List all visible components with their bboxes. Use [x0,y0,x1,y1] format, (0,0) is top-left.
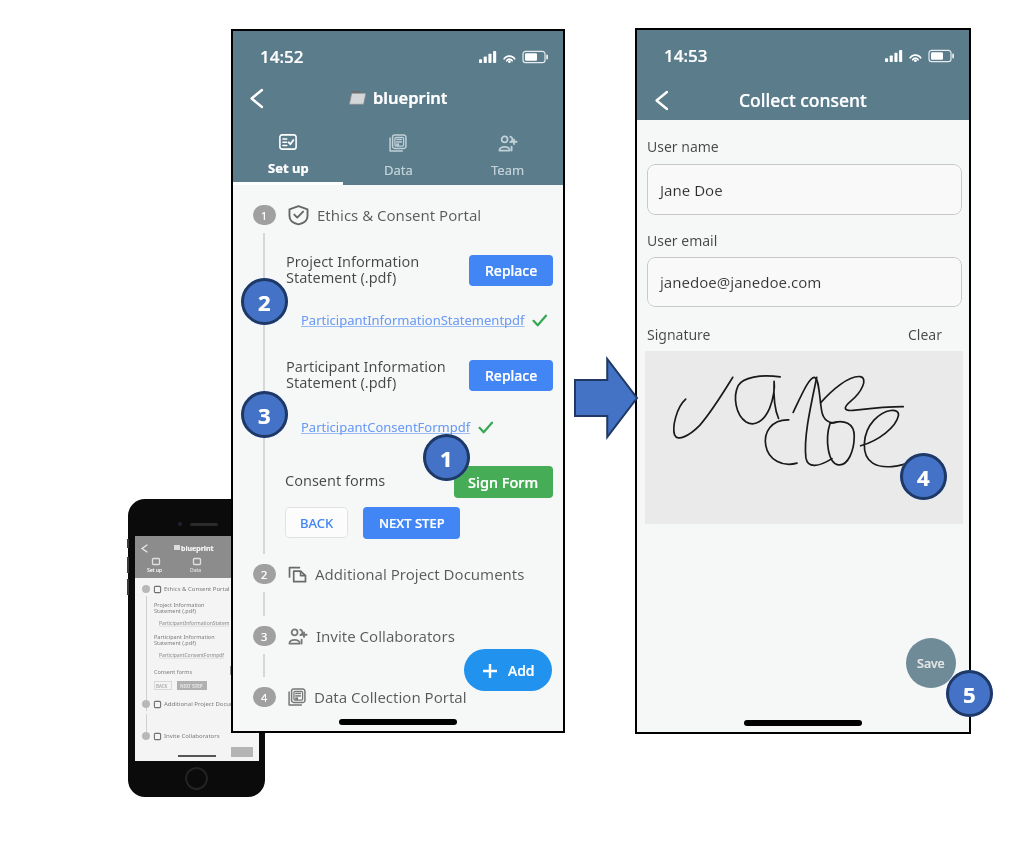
staticText: 1 [261,208,268,223]
staticText: Participant Information Statement (.pdf) [286,356,446,392]
staticText: NEXT STEP [180,683,203,689]
button[interactable]: Data [343,116,453,182]
staticText: Ethics & Consent Portal [164,585,230,593]
staticText: NEXT STEP [379,514,445,532]
button[interactable]: janedoe@janedoe.com [647,257,962,307]
staticText: Collect consent [739,88,867,112]
button[interactable]: Sign Form [454,466,553,498]
staticText: Set up [147,567,162,574]
staticText: Consent forms [154,668,193,675]
staticText: ParticipantConsentFormpdf [301,418,471,436]
staticText: Data [190,567,202,574]
staticText: 14:52 [260,45,304,68]
staticText: Signature [647,325,711,344]
staticText: BACK [156,683,168,689]
button[interactable]: 2 [253,564,563,584]
staticText: 2 [258,287,271,317]
staticText: janedoe@janedoe.com [660,272,822,292]
button[interactable]: 4 [253,687,563,707]
button[interactable]: Save [906,638,956,688]
button[interactable]: Back [655,91,668,110]
staticText: 2 [261,567,268,582]
staticText: Consent forms [285,470,386,490]
staticText: Data Collection Portal [314,687,467,707]
staticText: 3 [261,629,268,644]
staticText: 4 [917,462,930,492]
staticText: 5 [963,679,976,709]
button[interactable]: Set up [233,116,343,182]
button[interactable]: Back [250,89,263,108]
staticText: Project Information Statement (.pdf) [286,251,420,287]
other: Back [250,89,263,108]
staticText: Invite Collaborators [316,626,455,646]
staticText: Data [384,161,413,179]
button[interactable]: Replace [469,360,553,391]
button[interactable]: BACK [285,507,348,538]
staticText: User name [647,137,719,156]
staticText: ParticipantInformationStatementpdf [301,311,525,329]
staticText: Set up [268,159,309,177]
staticText: BACK [300,514,334,532]
button[interactable]: Jane Doe [647,164,962,215]
button[interactable]: Add [464,649,552,691]
other: Back [655,91,668,110]
button[interactable]: 1 [253,205,563,225]
staticText: ParticipantConsentFormpdf [159,652,225,659]
staticText: Ethics & Consent Portal [317,205,482,225]
staticText: Sign Form [468,472,539,492]
staticText: 4 [261,690,268,705]
staticText: Jane Doe [660,180,723,200]
staticText: ParticipantInformationStatem [159,620,230,627]
staticText: blueprint [373,86,448,108]
staticText: Replace [485,261,538,280]
staticText: Add [508,661,535,680]
staticText: 1 [440,443,453,473]
button[interactable]: Clear [908,325,942,344]
staticText: Additional Project Documents [315,564,525,584]
staticText: Project Information Statement (.pdf) [154,601,205,615]
staticText: Additional Project Docum [164,700,236,708]
button[interactable]: Replace [469,255,553,286]
staticText: Clear [908,325,942,344]
staticText: 14:53 [664,44,708,67]
staticText: Invite Collaborators [164,732,220,740]
staticText: Participant Information Statement (.pdf) [154,633,215,647]
staticText: 3 [258,400,271,430]
button[interactable]: Team [453,116,563,182]
staticText: Save [917,655,945,672]
staticText: Replace [485,366,538,385]
staticText: blueprint [181,544,214,554]
button[interactable]: NEXT STEP [363,507,460,539]
staticText: User email [647,231,718,250]
staticText: Team [491,161,525,179]
button[interactable]: 3 [253,626,563,646]
